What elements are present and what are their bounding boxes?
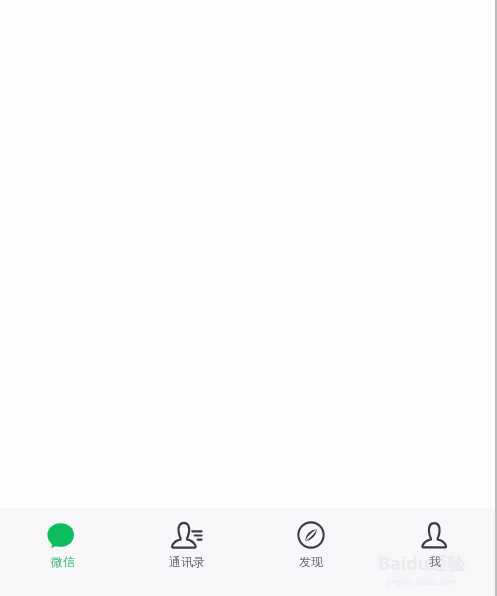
staticText: 通讯录 xyxy=(169,554,205,569)
staticText: Baidu经验 xyxy=(378,551,466,576)
staticText: jingyan.baidu.com xyxy=(387,576,457,587)
button[interactable]: Contacts xyxy=(125,508,249,569)
staticText: 发现 xyxy=(299,554,323,569)
button[interactable]: Me xyxy=(373,508,497,569)
button[interactable]: Discover xyxy=(249,508,373,569)
staticText: 微信 xyxy=(51,554,75,569)
button[interactable]: WeChat xyxy=(0,508,125,569)
staticText: 我 xyxy=(429,554,441,569)
